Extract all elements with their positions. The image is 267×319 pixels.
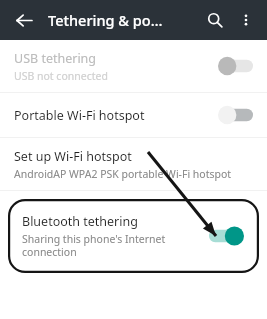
staticText: Portable Wi-Fi hotspot: [14, 107, 145, 124]
button[interactable]: Bluetooth tethering: [8, 199, 259, 273]
staticText: Bluetooth tethering: [22, 213, 138, 230]
button[interactable]: Portable Wi-Fi hotspot: [0, 93, 267, 137]
staticText: AndroidAP WPA2 PSK portable Wi-Fi hotspo…: [14, 167, 232, 181]
button[interactable]: Toggle off: [217, 105, 253, 125]
button[interactable]: Toggle off: [217, 56, 253, 76]
button[interactable]: Set up Wi-Fi hotspot: [0, 138, 267, 190]
staticText: Sharing this phone's Internet connection: [22, 232, 201, 259]
staticText: USB not connected: [14, 69, 108, 83]
staticText: Set up Wi-Fi hotspot: [14, 148, 132, 165]
button[interactable]: More options: [231, 5, 261, 35]
button[interactable]: Toggle on: [209, 226, 245, 246]
staticText: Tethering & po…: [48, 10, 199, 30]
button[interactable]: USB tethering: [0, 40, 267, 92]
button[interactable]: Search: [199, 4, 231, 36]
button[interactable]: Back: [8, 4, 40, 36]
staticText: USB tethering: [14, 50, 97, 67]
